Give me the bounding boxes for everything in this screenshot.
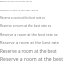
staticText: Reserve a room at the best rate xx [0, 56, 64, 63]
staticText: Reserve a room at the best rate xx [0, 0, 33, 3]
staticText: Reserve a room at the best rate xx [0, 16, 45, 20]
staticText: Reserve a room at the best rate xx [0, 40, 64, 45]
staticText: Reserve a room at the best rate xx [0, 24, 52, 28]
staticText: Reserve a room at the best rate xx [0, 32, 58, 37]
staticText: Reserve a room at the best rate xx [0, 8, 39, 11]
staticText: Reserve a room at the best rate xx [0, 48, 64, 54]
